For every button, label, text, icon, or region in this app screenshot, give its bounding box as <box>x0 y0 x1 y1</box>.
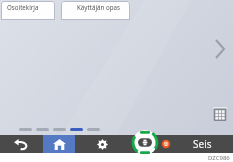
button[interactable]: Settings <box>86 135 118 153</box>
staticText: Osoitekirja <box>7 3 39 11</box>
staticText: DZC986 <box>208 154 230 162</box>
button[interactable]: Keypad <box>213 107 228 122</box>
button[interactable]: Connect printer <box>131 129 159 157</box>
button[interactable]: Stop <box>161 139 171 149</box>
button[interactable] <box>87 128 100 131</box>
staticText: Käyttäjän opas <box>77 3 120 11</box>
button[interactable]: Next page <box>211 36 229 62</box>
button[interactable] <box>19 128 32 131</box>
button[interactable] <box>36 128 49 131</box>
button[interactable]: Käyttäjän opas <box>61 1 130 20</box>
button[interactable]: Back <box>5 135 37 153</box>
button[interactable]: Seis <box>176 135 229 153</box>
staticText: Seis <box>193 137 212 151</box>
button[interactable] <box>70 128 83 131</box>
button[interactable] <box>53 128 66 131</box>
button[interactable]: Home <box>43 135 75 153</box>
button[interactable]: Osoitekirja <box>1 1 55 20</box>
